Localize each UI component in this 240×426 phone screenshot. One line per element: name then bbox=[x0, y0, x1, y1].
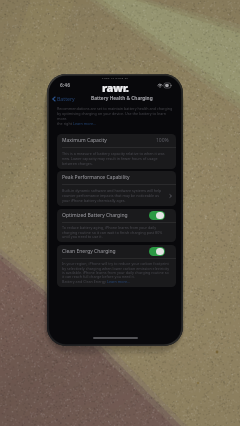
button[interactable]: Maximum Capacity bbox=[57, 134, 176, 169]
staticText: Optimized Battery Charging bbox=[62, 212, 128, 219]
staticText: In your region, iPhone will try to reduc… bbox=[62, 261, 170, 279]
button[interactable]: Toggle switch bbox=[149, 211, 165, 220]
button[interactable]: Learn more... bbox=[73, 121, 97, 126]
staticText: Built-in dynamic software and hardware s… bbox=[62, 188, 167, 203]
staticText: the right bbox=[57, 121, 73, 126]
button[interactable]: Clean Energy Charging bbox=[62, 247, 165, 256]
staticText: Battery Health & Charging bbox=[91, 95, 153, 102]
staticText: 6:46 bbox=[60, 82, 70, 89]
staticText: rawr. bbox=[102, 80, 129, 95]
staticText: Peak Performance Capability bbox=[62, 174, 130, 181]
staticText: 100% bbox=[156, 137, 169, 144]
button[interactable]: Peak Performance Capability bbox=[57, 171, 176, 206]
staticText: This is a measure of battery capacity re… bbox=[62, 151, 170, 166]
button[interactable]: Toggle switch bbox=[149, 247, 165, 256]
button[interactable]: Battery bbox=[52, 95, 75, 102]
staticText: Recommendations are set to maintain batt… bbox=[57, 106, 173, 121]
staticText: Clean Energy Charging bbox=[62, 248, 116, 255]
staticText: Battery and Clean Energy bbox=[62, 279, 107, 284]
staticText: Maximum Capacity bbox=[62, 137, 107, 144]
staticText: Battery bbox=[57, 95, 75, 102]
staticText: To reduce battery aging, iPhone learns f… bbox=[62, 225, 170, 239]
staticText: SHOP AT RAWR.PK bbox=[102, 77, 129, 80]
button[interactable]: Learn more... bbox=[107, 279, 131, 284]
button[interactable]: Optimized Battery Charging bbox=[62, 211, 165, 220]
